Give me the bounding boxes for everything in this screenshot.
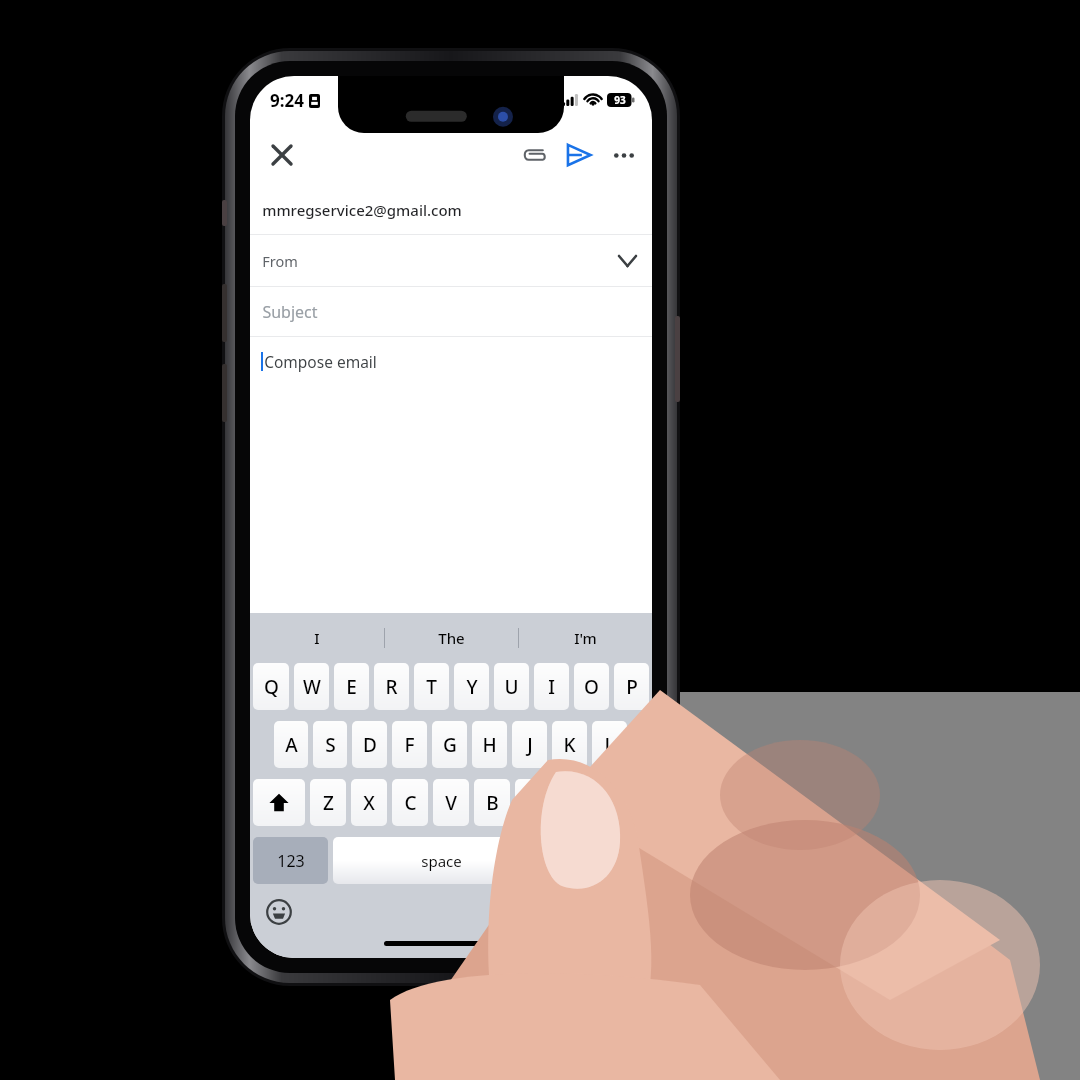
staticText: Subject (262, 301, 318, 323)
button[interactable]: Send (556, 132, 602, 178)
staticText: B (486, 790, 499, 816)
button[interactable]: X (351, 779, 387, 826)
button[interactable]: H (472, 721, 507, 768)
button[interactable]: E (334, 663, 369, 710)
button[interactable]: Emoji (262, 895, 296, 929)
staticText: H (482, 732, 497, 758)
button[interactable]: Backspace (597, 779, 649, 826)
staticText: L (604, 732, 615, 758)
staticText: C (404, 790, 417, 816)
button[interactable]: I (250, 613, 384, 663)
staticText: U (504, 674, 519, 700)
button[interactable]: N (515, 779, 551, 826)
staticText: I (548, 674, 555, 700)
staticText: space (421, 851, 462, 871)
button[interactable]: Shift (253, 779, 305, 826)
staticText: mmregservice2@gmail.com (262, 200, 462, 220)
staticText: P (626, 674, 638, 700)
button[interactable]: Attach file (512, 133, 556, 177)
staticText: X (363, 790, 375, 816)
staticText: Q (264, 674, 279, 700)
button[interactable]: space (333, 837, 549, 884)
button[interactable]: Compose email (250, 337, 652, 385)
staticText: 93 (614, 93, 626, 107)
staticText: J (527, 732, 533, 758)
staticText: Compose email (264, 351, 377, 372)
staticText: 123 (277, 850, 305, 872)
staticText: S (325, 732, 336, 758)
button[interactable]: Z (310, 779, 346, 826)
staticText: 9:24 (270, 89, 304, 112)
staticText: I (314, 628, 320, 648)
button[interactable]: Q (253, 663, 289, 710)
staticText: A (285, 732, 298, 758)
button[interactable]: B (474, 779, 510, 826)
staticText: From (262, 251, 298, 271)
button[interactable]: I'm (519, 613, 652, 663)
button[interactable]: W (294, 663, 329, 710)
button[interactable]: The (385, 613, 518, 663)
button[interactable]: More options (602, 133, 646, 177)
button[interactable]: U (494, 663, 529, 710)
button[interactable]: From (250, 235, 652, 286)
button[interactable]: J (512, 721, 547, 768)
button[interactable]: C (392, 779, 428, 826)
button[interactable]: A (274, 721, 308, 768)
button[interactable]: Close (260, 133, 304, 177)
button[interactable]: I (534, 663, 569, 710)
staticText: O (584, 674, 599, 700)
staticText: K (563, 732, 576, 758)
button[interactable]: T (414, 663, 449, 710)
staticText: G (443, 732, 457, 758)
button[interactable]: Y (454, 663, 489, 710)
staticText: R (385, 674, 398, 700)
staticText: Z (323, 790, 334, 816)
button[interactable]: S (313, 721, 347, 768)
button[interactable]: V (433, 779, 469, 826)
button[interactable]: K (552, 721, 587, 768)
staticText: return (581, 851, 623, 870)
staticText: T (426, 674, 437, 700)
button[interactable]: return (554, 837, 649, 884)
staticText: V (445, 790, 457, 816)
staticText: Y (466, 674, 478, 700)
button[interactable]: Subject (250, 287, 652, 336)
button[interactable]: R (374, 663, 409, 710)
button[interactable]: D (352, 721, 387, 768)
staticText: I'm (574, 628, 597, 648)
button[interactable]: O (574, 663, 609, 710)
button[interactable]: mmregservice2@gmail.com (250, 186, 652, 234)
button[interactable]: F (392, 721, 427, 768)
staticText: F (404, 732, 415, 758)
button[interactable]: L (592, 721, 627, 768)
staticText: The (438, 628, 465, 648)
button[interactable]: G (432, 721, 467, 768)
button[interactable]: 123 (253, 837, 328, 884)
staticText: W (303, 674, 321, 700)
button[interactable]: P (614, 663, 649, 710)
staticText: E (346, 674, 357, 700)
staticText: D (363, 732, 377, 758)
